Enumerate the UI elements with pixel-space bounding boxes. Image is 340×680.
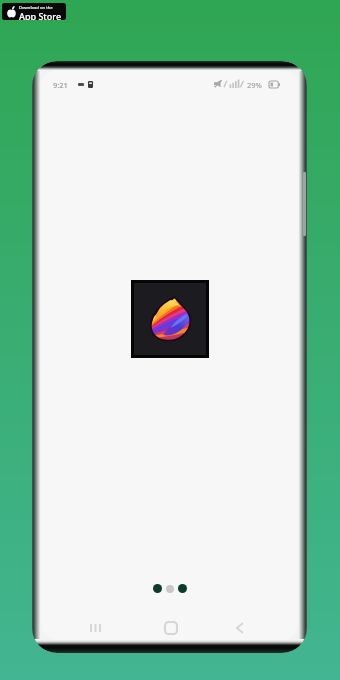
button[interactable]: Back <box>227 615 253 640</box>
staticText: 29% <box>247 80 262 90</box>
staticText: 9:21 <box>53 80 68 90</box>
staticText: App Store <box>19 10 62 20</box>
button[interactable]: Recents <box>82 615 108 640</box>
staticText: Download on the <box>19 5 53 11</box>
button[interactable]: Home <box>158 615 184 640</box>
button[interactable]: Download on the App Store <box>2 3 66 20</box>
